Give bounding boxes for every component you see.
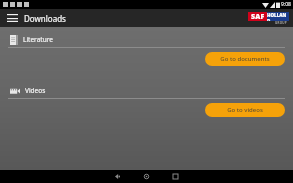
button[interactable]: Literature [0,32,293,47]
staticText: Go to videos [227,106,263,114]
other: SAF Holland logo [248,12,289,25]
button[interactable]: Go to videos [205,103,285,117]
staticText: HOLLAND [267,12,289,21]
button[interactable]: Open navigation menu [0,9,24,27]
staticText: Go to documents [220,55,270,63]
button[interactable]: Recent apps [161,170,190,183]
staticText: Literature [23,35,53,44]
button[interactable]: Videos [0,83,293,98]
staticText: 9:08 [281,1,291,8]
staticText: GROUP [275,21,287,25]
staticText: Downloads [24,13,66,24]
button[interactable]: Back [103,170,132,183]
button[interactable]: Go to documents [205,52,285,66]
staticText: Videos [25,86,46,95]
staticText: SAF [251,12,265,21]
button[interactable]: Home [132,170,161,183]
